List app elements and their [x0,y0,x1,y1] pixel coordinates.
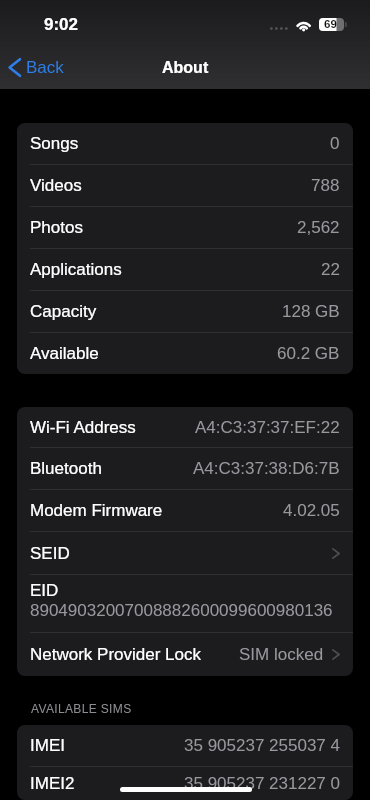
staticText: A4:C3:37:38:D6:7B [193,459,340,478]
staticText: 89049032007008882600099600980136 [30,601,333,620]
button[interactable]: SEID [17,532,353,574]
staticText: 2,562 [297,218,340,237]
staticText: AVAILABLE SIMS [31,702,132,715]
staticText: 0 [330,134,340,153]
button[interactable]: Capacity [17,291,353,332]
staticText: EID [30,581,59,600]
staticText: Back [26,58,64,77]
staticText: Bluetooth [30,459,102,478]
staticText: Wi-Fi Address [30,418,136,437]
button[interactable]: EID [17,575,353,632]
button[interactable]: Photos [17,207,353,248]
staticText: Songs [30,134,79,153]
button[interactable]: Available [17,333,353,374]
staticText: 788 [311,176,340,195]
staticText: A4:C3:37:37:EF:22 [195,418,340,437]
staticText: SEID [30,544,70,563]
staticText: About [162,59,209,77]
button[interactable]: Applications [17,249,353,290]
staticText: Capacity [30,302,97,321]
button[interactable]: Wi-Fi Address [17,407,353,447]
staticText: Modem Firmware [30,501,163,520]
staticText: 22 [321,260,340,279]
button[interactable]: Back [0,52,74,83]
staticText: 128 GB [282,302,340,321]
button[interactable]: Songs [17,123,353,164]
button[interactable]: Modem Firmware [17,490,353,531]
button[interactable]: Network Provider Lock [17,633,353,676]
staticText: Videos [30,176,82,195]
staticText: Network Provider Lock [30,645,202,664]
staticText: 9:02 [44,15,79,34]
staticText: IMEI [30,736,65,755]
button[interactable]: IMEI2 [17,767,353,800]
button[interactable]: Bluetooth [17,448,353,489]
staticText: 69 [324,18,337,31]
staticText: Photos [30,218,83,237]
staticText: Applications [30,260,122,279]
staticText: 35 905237 231227 0 [184,774,340,793]
staticText: 60.2 GB [277,344,340,363]
staticText: IMEI2 [30,774,75,793]
staticText: SIM locked [239,645,324,664]
staticText: 35 905237 255037 4 [184,736,340,755]
staticText: 4.02.05 [283,501,340,520]
button[interactable]: Videos [17,165,353,206]
button[interactable]: IMEI [17,725,353,766]
staticText: Available [30,344,99,363]
